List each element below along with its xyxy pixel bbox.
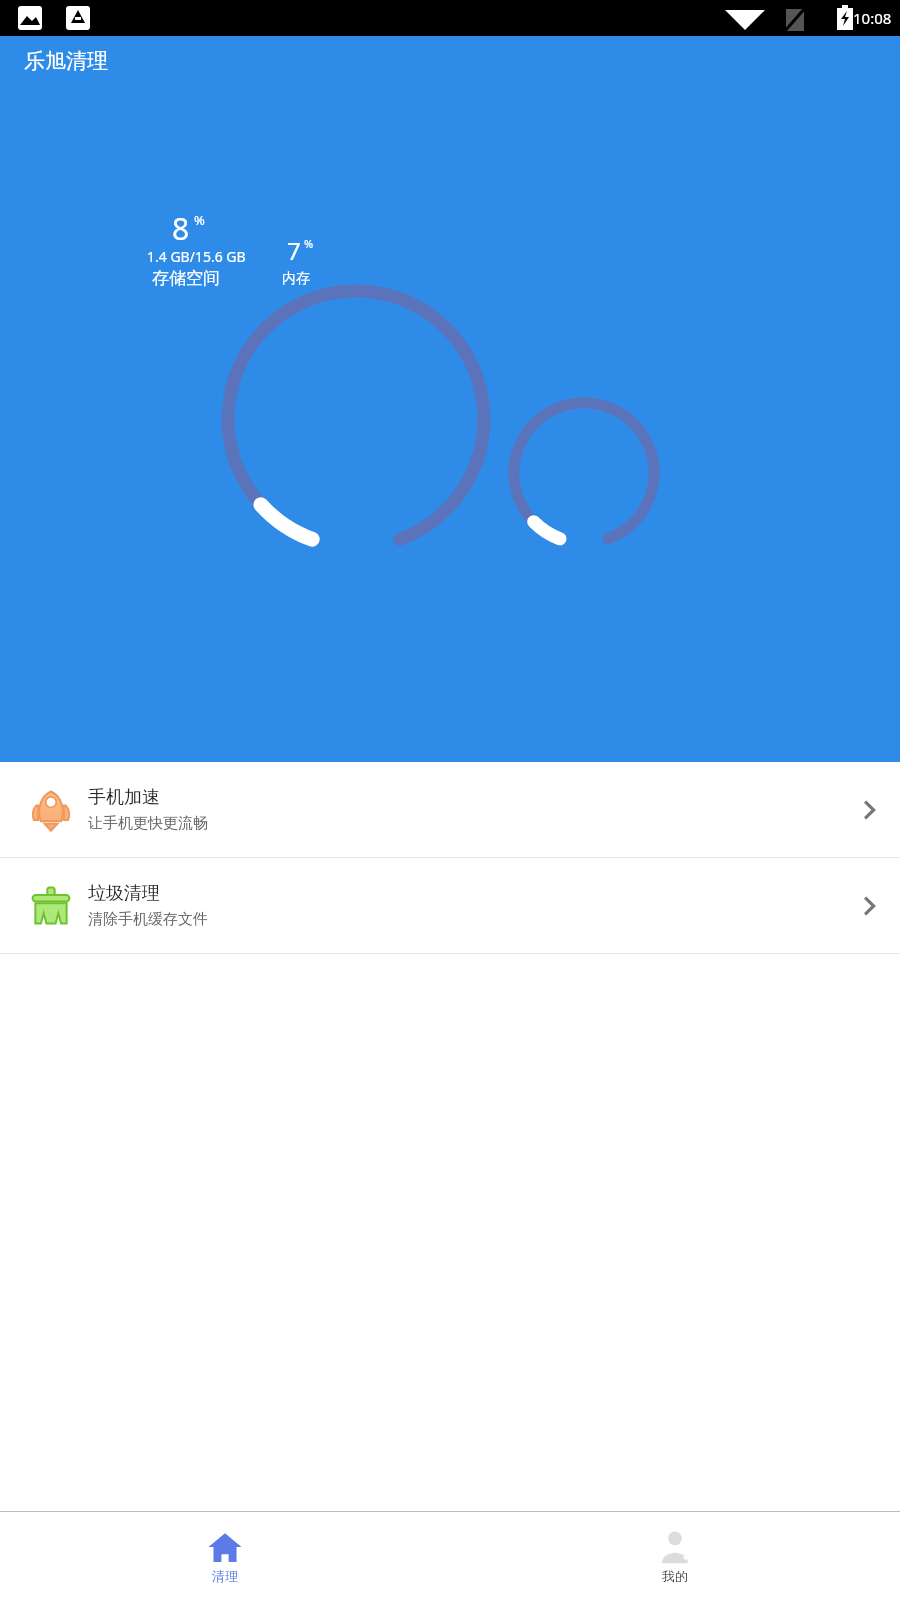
- staticText: 手机加速: [88, 786, 160, 809]
- button[interactable]: 手机加速: [0, 762, 900, 857]
- staticText: 我的: [662, 1568, 688, 1584]
- staticText: 存储空间: [152, 268, 220, 289]
- other: 清理: [207, 1529, 243, 1565]
- staticText: 让手机更快更流畅: [88, 814, 208, 833]
- staticText: 7: [287, 234, 301, 267]
- other: 我的: [657, 1529, 693, 1565]
- staticText: 乐旭清理: [24, 48, 108, 74]
- staticText: %: [194, 211, 205, 229]
- button[interactable]: 垃圾清理: [0, 858, 900, 953]
- staticText: 清除手机缓存文件: [88, 910, 208, 929]
- button[interactable]: 我的: [585, 1523, 765, 1590]
- button[interactable]: 清理: [135, 1523, 315, 1590]
- staticText: 10:08: [853, 8, 892, 28]
- staticText: 清理: [212, 1568, 238, 1584]
- staticText: 垃圾清理: [88, 882, 160, 905]
- staticText: 8: [172, 208, 190, 249]
- staticText: %: [304, 236, 314, 251]
- staticText: 1.4 GB/15.6 GB: [147, 247, 246, 266]
- staticText: 内存: [282, 270, 310, 288]
